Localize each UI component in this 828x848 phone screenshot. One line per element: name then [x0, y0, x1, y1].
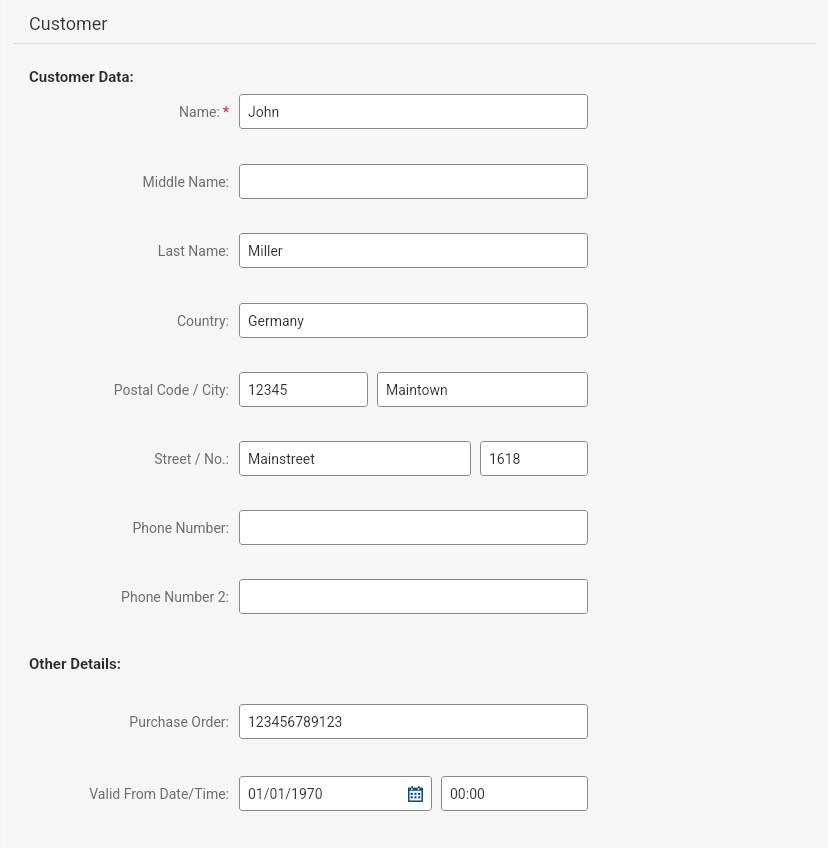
- button[interactable]: 01/01/1970: [239, 776, 432, 811]
- button[interactable]: Maintown: [377, 372, 588, 407]
- staticText: Miller: [248, 243, 283, 259]
- staticText: Phone Number:: [132, 520, 229, 536]
- staticText: Phone Number 2:: [121, 589, 229, 605]
- staticText: 123456789123: [248, 714, 343, 730]
- staticText: Germany: [248, 313, 304, 329]
- button[interactable]: John: [239, 94, 588, 129]
- staticText: Last Name:: [157, 243, 229, 259]
- button[interactable]: [239, 510, 588, 545]
- button[interactable]: [239, 579, 588, 614]
- staticText: 12345: [248, 382, 288, 398]
- staticText: Valid From Date/Time:: [89, 786, 229, 802]
- staticText: Other Details:: [29, 655, 121, 673]
- button[interactable]: Open date picker: [408, 786, 423, 802]
- staticText: Street / No.:: [154, 451, 229, 467]
- button[interactable]: Germany: [239, 303, 588, 338]
- staticText: 00:00: [450, 786, 485, 802]
- button[interactable]: [239, 164, 588, 199]
- button[interactable]: Mainstreet: [239, 441, 471, 476]
- staticText: Customer: [29, 13, 108, 34]
- staticText: 1618: [489, 451, 521, 467]
- staticText: John: [248, 104, 280, 120]
- staticText: Country:: [176, 313, 229, 329]
- staticText: Mainstreet: [248, 451, 315, 467]
- staticText: Middle Name:: [142, 174, 229, 190]
- staticText: Name: *: [179, 104, 229, 120]
- staticText: 01/01/1970: [248, 786, 323, 802]
- staticText: Maintown: [386, 382, 448, 398]
- button[interactable]: Miller: [239, 233, 588, 268]
- staticText: Postal Code / City:: [113, 382, 229, 398]
- button[interactable]: 00:00: [441, 776, 588, 811]
- button[interactable]: 123456789123: [239, 704, 588, 739]
- button[interactable]: 1618: [480, 441, 588, 476]
- button[interactable]: 12345: [239, 372, 368, 407]
- staticText: Customer Data:: [29, 68, 134, 86]
- staticText: Purchase Order:: [129, 714, 229, 730]
